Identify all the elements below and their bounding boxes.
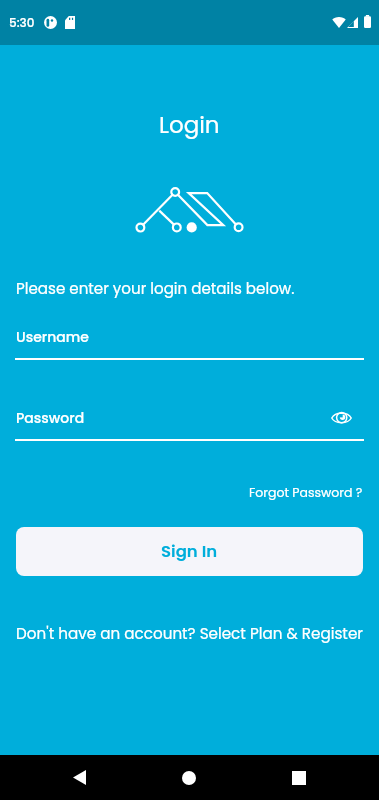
- staticText: Login: [159, 109, 220, 141]
- button[interactable]: Forgot Password ?: [249, 484, 363, 501]
- button[interactable]: Recent apps: [274, 755, 322, 800]
- staticText: Sign In: [161, 540, 218, 563]
- staticText: 5:30: [9, 14, 35, 31]
- button[interactable]: Back: [55, 755, 103, 800]
- staticText: Please enter your login details below.: [16, 278, 295, 299]
- staticText: Username: [16, 327, 89, 347]
- button[interactable]: Sign In: [16, 527, 363, 576]
- button[interactable]: Don't have an account? Select Plan & Reg…: [0, 623, 379, 644]
- button[interactable]: Home: [165, 755, 213, 800]
- staticText: Password: [16, 408, 85, 428]
- button[interactable]: Show password: [331, 411, 352, 425]
